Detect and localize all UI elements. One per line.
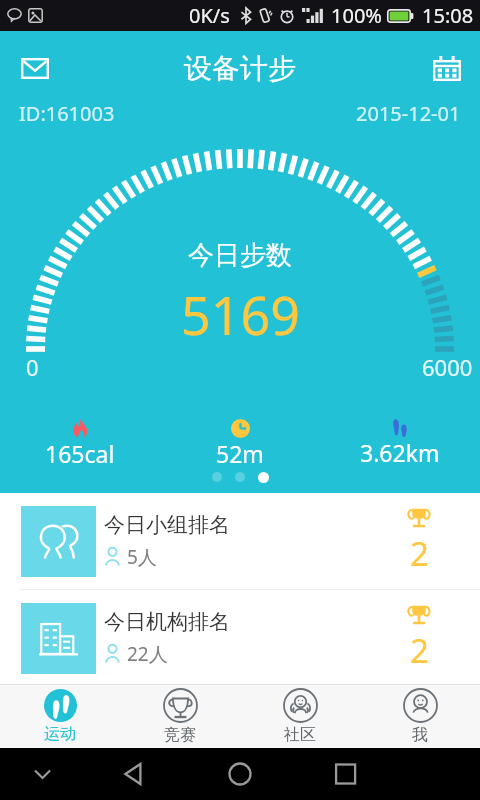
staticText: 0 xyxy=(26,352,39,382)
staticText: 2015-12-01 xyxy=(356,100,461,127)
button[interactable]: Messages xyxy=(14,47,56,89)
staticText: 100% xyxy=(331,2,382,29)
staticText: 2 xyxy=(410,531,429,576)
button[interactable]: 运动 xyxy=(0,685,120,748)
staticText: 设备计步 xyxy=(184,51,296,86)
button[interactable]: 社区 xyxy=(240,685,360,748)
staticText: 3.62km xyxy=(360,437,440,468)
button[interactable]: 我 xyxy=(360,685,480,748)
staticText: 5人 xyxy=(127,544,157,570)
staticText: 社区 xyxy=(284,725,316,745)
staticText: 竞赛 xyxy=(164,725,196,745)
staticText: 今日步数 xyxy=(188,239,292,272)
staticText: 0K/s xyxy=(189,2,230,29)
staticText: 运动 xyxy=(44,724,76,744)
button[interactable]: 今日机构排名 xyxy=(0,590,480,686)
staticText: 165cal xyxy=(45,438,115,469)
staticText: 我 xyxy=(412,725,428,745)
staticText: 6000 xyxy=(422,352,473,382)
staticText: 今日小组排名 xyxy=(104,512,230,538)
staticText: 2 xyxy=(410,628,429,673)
button[interactable]: 今日小组排名 xyxy=(0,493,480,589)
staticText: 22人 xyxy=(127,641,168,667)
button[interactable]: 竞赛 xyxy=(120,685,240,748)
staticText: 52m xyxy=(216,438,264,469)
staticText: 15:08 xyxy=(422,2,474,29)
staticText: 5169 xyxy=(181,279,300,350)
staticText: ID:161003 xyxy=(19,100,115,127)
staticText: 今日机构排名 xyxy=(104,609,230,635)
button[interactable]: Calendar xyxy=(426,47,468,89)
